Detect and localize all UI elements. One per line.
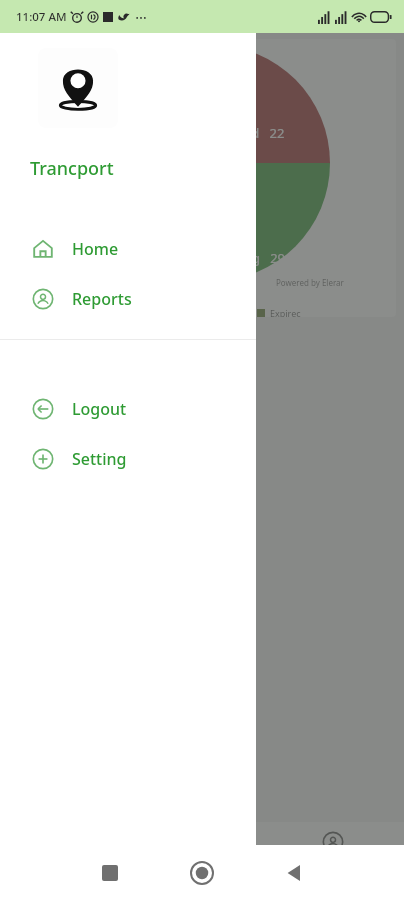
- button[interactable]: Back: [264, 845, 324, 900]
- staticText: Trancport: [30, 156, 114, 181]
- staticText: Reports: [72, 288, 132, 310]
- button[interactable]: Logout: [0, 392, 256, 425]
- button[interactable]: App logo: [38, 48, 118, 128]
- staticText: Logout: [72, 398, 127, 420]
- staticText: ng 29: [244, 249, 286, 267]
- button[interactable]: Home: [172, 845, 232, 900]
- staticText: Home: [72, 238, 119, 260]
- button[interactable]: Home: [0, 232, 256, 265]
- other: App logo: [52, 62, 104, 114]
- button[interactable]: Reports: [222, 827, 263, 872]
- staticText: Setting: [72, 448, 127, 470]
- button[interactable]: Recents: [80, 845, 140, 900]
- staticText: Powered by Elerar: [276, 277, 344, 288]
- button[interactable]: More...: [314, 827, 352, 872]
- staticText: ed 22: [244, 124, 285, 142]
- staticText: 11:07 AM: [16, 9, 67, 25]
- staticText: Expirec: [270, 307, 301, 317]
- button[interactable]: Reports: [0, 282, 256, 315]
- button[interactable]: Setting: [0, 442, 256, 475]
